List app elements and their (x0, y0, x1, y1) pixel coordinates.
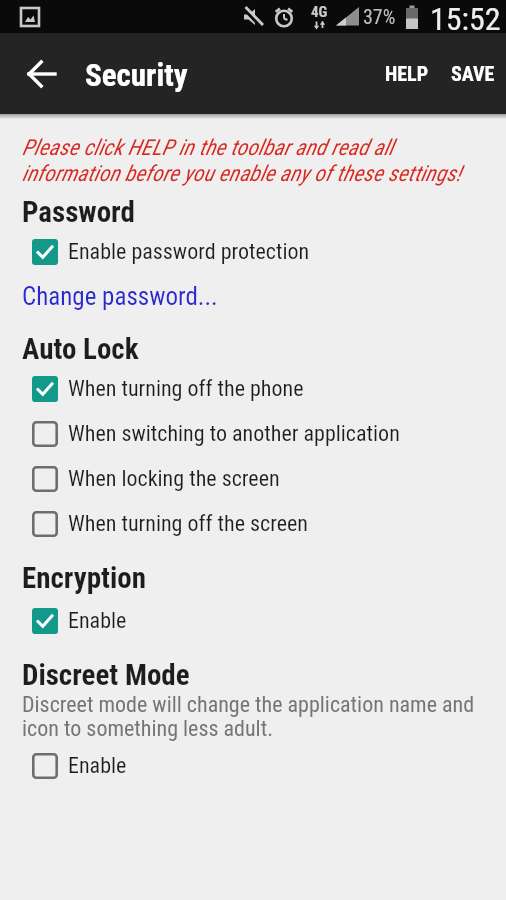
staticText: Security (85, 57, 188, 93)
button[interactable]: When locking the screen (22, 456, 484, 501)
staticText: Auto Lock (22, 332, 139, 366)
button[interactable]: SAVE (440, 33, 506, 114)
staticText: When turning off the screen (68, 511, 308, 537)
button[interactable]: When turning off the phone (22, 366, 484, 411)
staticText: Enable (68, 753, 127, 779)
staticText: When turning off the phone (68, 376, 304, 402)
button[interactable]: When switching to another application (22, 411, 484, 456)
staticText: 15:52 (430, 0, 501, 33)
staticText: Discreet Mode (22, 658, 190, 692)
staticText: Encryption (22, 561, 146, 595)
staticText: When locking the screen (68, 466, 280, 492)
staticText: HELP (385, 62, 429, 85)
staticText: When switching to another application (68, 421, 400, 447)
button[interactable]: Enable password protection (22, 229, 484, 274)
button[interactable] (16, 33, 68, 114)
staticText: SAVE (451, 62, 495, 85)
staticText: 37% (363, 5, 396, 28)
button[interactable]: Enable (22, 743, 484, 788)
button[interactable]: Enable (22, 598, 484, 643)
button[interactable]: Change password... (22, 282, 218, 311)
staticText: Password (22, 195, 135, 229)
staticText: Enable (68, 608, 127, 634)
staticText: Please click HELP in the toolbar and rea… (22, 135, 462, 186)
staticText: Discreet mode will change the applicatio… (22, 692, 475, 741)
staticText: Enable password protection (68, 239, 310, 265)
button[interactable]: When turning off the screen (22, 501, 484, 546)
button[interactable]: HELP (374, 33, 440, 114)
staticText: 4G (311, 3, 328, 21)
